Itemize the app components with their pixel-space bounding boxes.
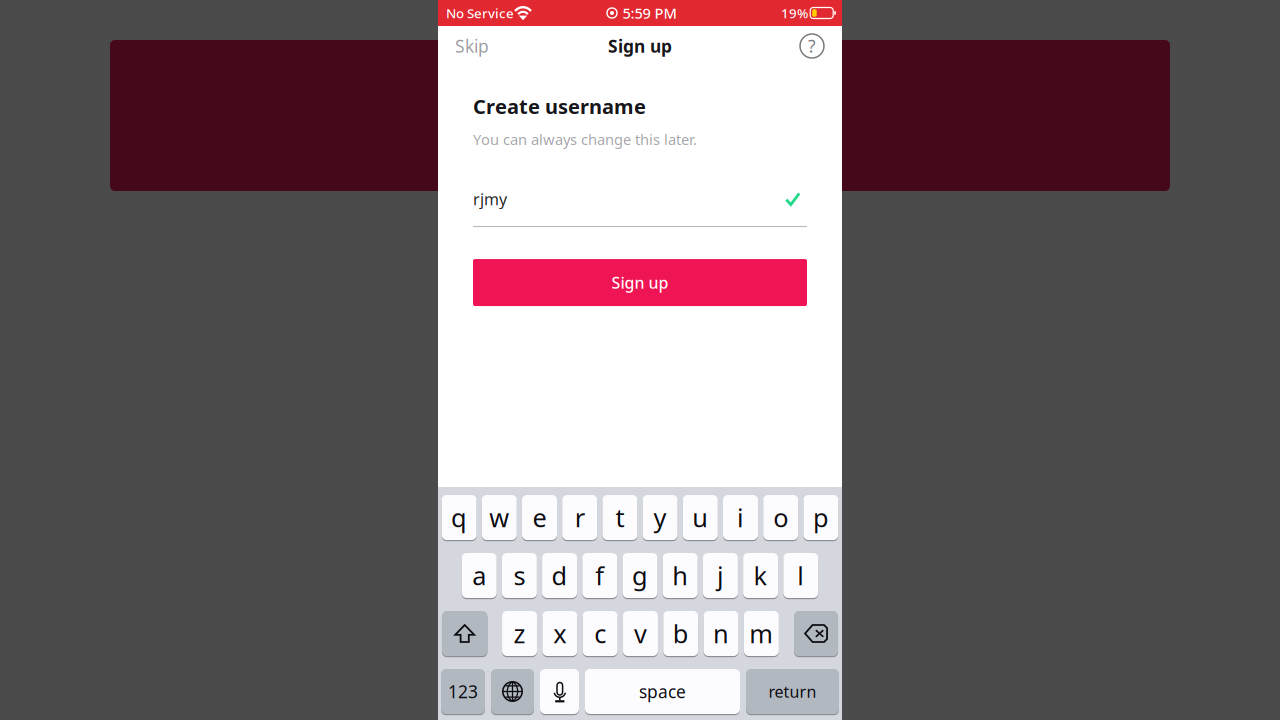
button[interactable]: c bbox=[583, 611, 618, 657]
button[interactable]: s bbox=[502, 553, 537, 599]
staticText: Create username bbox=[473, 93, 646, 120]
button[interactable]: r bbox=[562, 495, 597, 541]
button[interactable]: n bbox=[703, 611, 738, 657]
button[interactable]: j bbox=[703, 553, 738, 599]
button[interactable]: a bbox=[462, 553, 497, 599]
button[interactable]: return bbox=[746, 669, 839, 715]
staticText: Sign up bbox=[608, 34, 672, 57]
button[interactable]: Dictation bbox=[540, 669, 579, 715]
button[interactable]: Shift bbox=[442, 611, 487, 657]
button[interactable]: q bbox=[442, 495, 477, 541]
button[interactable]: e bbox=[522, 495, 557, 541]
staticText: 5:59 PM bbox=[622, 3, 676, 23]
staticText: p bbox=[813, 501, 829, 534]
button[interactable]: h bbox=[663, 553, 698, 599]
staticText: m bbox=[749, 617, 773, 650]
staticText: Skip bbox=[455, 34, 489, 57]
button[interactable]: Skip bbox=[438, 24, 506, 67]
button[interactable]: i bbox=[723, 495, 758, 541]
staticText: n bbox=[713, 617, 729, 650]
staticText: Sign up bbox=[611, 272, 668, 293]
staticText: space bbox=[639, 680, 686, 703]
staticText: l bbox=[797, 559, 804, 592]
staticText: 19% bbox=[781, 4, 808, 22]
staticText: g bbox=[632, 559, 648, 592]
staticText: e bbox=[532, 501, 546, 534]
staticText: y bbox=[654, 501, 667, 534]
button[interactable]: m bbox=[744, 611, 779, 657]
staticText: rjmy bbox=[473, 188, 507, 210]
button[interactable]: d bbox=[542, 553, 577, 599]
button[interactable]: o bbox=[763, 495, 798, 541]
staticText: s bbox=[513, 559, 525, 592]
button[interactable]: z bbox=[502, 611, 537, 657]
button[interactable]: k bbox=[743, 553, 778, 599]
button[interactable]: x bbox=[542, 611, 577, 657]
staticText: d bbox=[552, 559, 568, 592]
button[interactable]: 123 bbox=[441, 669, 485, 715]
button[interactable]: g bbox=[622, 553, 657, 599]
button[interactable]: y bbox=[643, 495, 678, 541]
staticText: k bbox=[754, 559, 768, 592]
staticText: t bbox=[615, 501, 624, 534]
staticText: i bbox=[737, 501, 744, 534]
staticText: v bbox=[634, 617, 647, 650]
button[interactable]: v bbox=[623, 611, 658, 657]
staticText: You can always change this later. bbox=[473, 130, 697, 149]
button[interactable]: u bbox=[683, 495, 718, 541]
staticText: c bbox=[594, 617, 606, 650]
staticText: z bbox=[513, 617, 525, 650]
staticText: w bbox=[489, 501, 509, 534]
button[interactable]: t bbox=[602, 495, 637, 541]
button[interactable]: l bbox=[783, 553, 818, 599]
button[interactable]: Help bbox=[788, 26, 842, 66]
button[interactable]: Delete bbox=[794, 611, 838, 657]
staticText: r bbox=[575, 501, 585, 534]
button[interactable]: p bbox=[803, 495, 838, 541]
staticText: x bbox=[553, 617, 566, 650]
staticText: u bbox=[692, 501, 708, 534]
button[interactable]: space bbox=[585, 669, 740, 715]
staticText: No Service bbox=[446, 4, 514, 22]
staticText: f bbox=[595, 559, 604, 592]
button[interactable]: b bbox=[663, 611, 698, 657]
staticText: o bbox=[773, 501, 788, 534]
staticText: q bbox=[451, 501, 467, 534]
button[interactable]: w bbox=[482, 495, 517, 541]
staticText: h bbox=[672, 559, 688, 592]
staticText: j bbox=[717, 559, 724, 592]
staticText: ? bbox=[808, 34, 816, 57]
button[interactable]: f bbox=[582, 553, 617, 599]
staticText: 123 bbox=[448, 680, 478, 703]
staticText: a bbox=[472, 559, 486, 592]
staticText: b bbox=[673, 617, 689, 650]
button[interactable]: Next keyboard bbox=[491, 669, 534, 715]
staticText: return bbox=[768, 681, 816, 702]
button[interactable]: Sign up bbox=[473, 259, 807, 306]
